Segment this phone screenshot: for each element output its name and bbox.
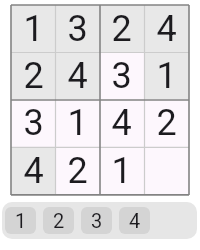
button[interactable]: 1 bbox=[144, 52, 189, 99]
staticText: 4 bbox=[23, 150, 44, 192]
button[interactable]: 4 bbox=[11, 147, 55, 195]
button[interactable] bbox=[144, 147, 189, 195]
button[interactable]: 4 bbox=[99, 99, 144, 147]
staticText: 4 bbox=[156, 8, 177, 50]
staticText: 2 bbox=[111, 8, 132, 50]
staticText: 3 bbox=[23, 102, 44, 144]
staticText: 4 bbox=[111, 102, 132, 144]
staticText: 4 bbox=[67, 55, 88, 97]
staticText: 1 bbox=[23, 8, 44, 50]
button[interactable]: 1 bbox=[11, 5, 55, 52]
button[interactable]: 2 bbox=[99, 5, 144, 52]
staticText: 3 bbox=[111, 55, 132, 97]
button[interactable]: Enter 1 bbox=[5, 207, 36, 234]
button[interactable]: 2 bbox=[55, 147, 99, 195]
staticText: 4 bbox=[129, 209, 141, 232]
button[interactable]: 1 bbox=[55, 99, 99, 147]
staticText: 1 bbox=[111, 150, 132, 192]
staticText: 2 bbox=[156, 102, 177, 144]
button[interactable]: 3 bbox=[55, 5, 99, 52]
staticText: 1 bbox=[15, 209, 27, 232]
button[interactable]: Enter 4 bbox=[119, 207, 150, 234]
button[interactable]: Enter 3 bbox=[81, 207, 112, 234]
staticText: 2 bbox=[23, 55, 44, 97]
button[interactable]: 1 bbox=[99, 147, 144, 195]
staticText: 1 bbox=[67, 102, 88, 144]
button[interactable]: 2 bbox=[11, 52, 55, 99]
button[interactable]: 3 bbox=[99, 52, 144, 99]
staticText: 2 bbox=[67, 150, 88, 192]
button[interactable]: 4 bbox=[144, 5, 189, 52]
staticText: 1 bbox=[156, 55, 177, 97]
button[interactable]: 4 bbox=[55, 52, 99, 99]
staticText: 2 bbox=[53, 209, 65, 232]
button[interactable]: 2 bbox=[144, 99, 189, 147]
staticText: 3 bbox=[67, 8, 88, 50]
button[interactable]: 3 bbox=[11, 99, 55, 147]
button[interactable]: Enter 2 bbox=[43, 207, 74, 234]
staticText: 3 bbox=[91, 209, 103, 232]
